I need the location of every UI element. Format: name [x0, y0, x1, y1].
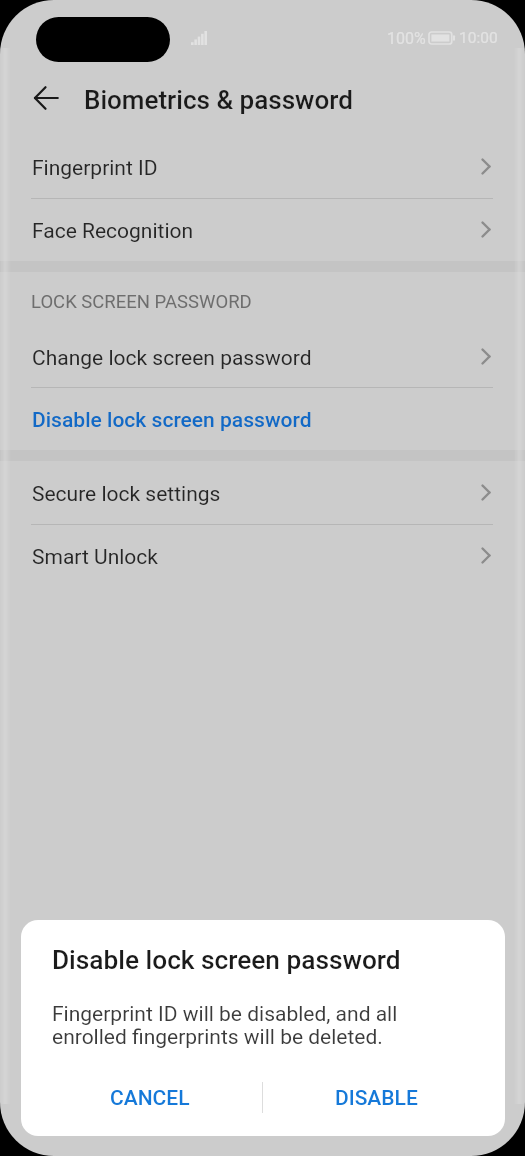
staticText: Secure lock settings — [32, 482, 221, 507]
staticText: Face Recognition — [32, 219, 194, 244]
button[interactable]: CANCEL — [41, 1070, 259, 1122]
button[interactable]: Face Recognition — [0, 198, 525, 261]
staticText: Fingerprint ID will be disabled, and all — [52, 1002, 398, 1027]
staticText: enrolled fingerprints will be deleted. — [52, 1025, 383, 1050]
button[interactable]: Secure lock settings — [0, 461, 525, 524]
staticText: Biometrics & password — [84, 85, 353, 115]
staticText: Disable lock screen password — [32, 408, 312, 433]
staticText: CANCEL — [110, 1086, 190, 1111]
staticText: 100% — [387, 29, 426, 48]
button[interactable]: Smart Unlock — [0, 524, 525, 587]
staticText: Disable lock screen password — [52, 945, 401, 976]
staticText: 10:00 — [459, 29, 498, 47]
button[interactable]: Back — [23, 75, 69, 121]
staticText: LOCK SCREEN PASSWORD — [31, 291, 252, 313]
button[interactable]: Disable lock screen password — [0, 387, 525, 450]
staticText: Fingerprint ID — [32, 156, 158, 181]
button[interactable]: Fingerprint ID — [0, 135, 525, 198]
button[interactable]: DISABLE — [267, 1070, 485, 1122]
staticText: Change lock screen password — [32, 346, 312, 371]
staticText: Smart Unlock — [32, 545, 158, 570]
staticText: DISABLE — [335, 1086, 418, 1111]
button[interactable]: Change lock screen password — [0, 325, 525, 387]
